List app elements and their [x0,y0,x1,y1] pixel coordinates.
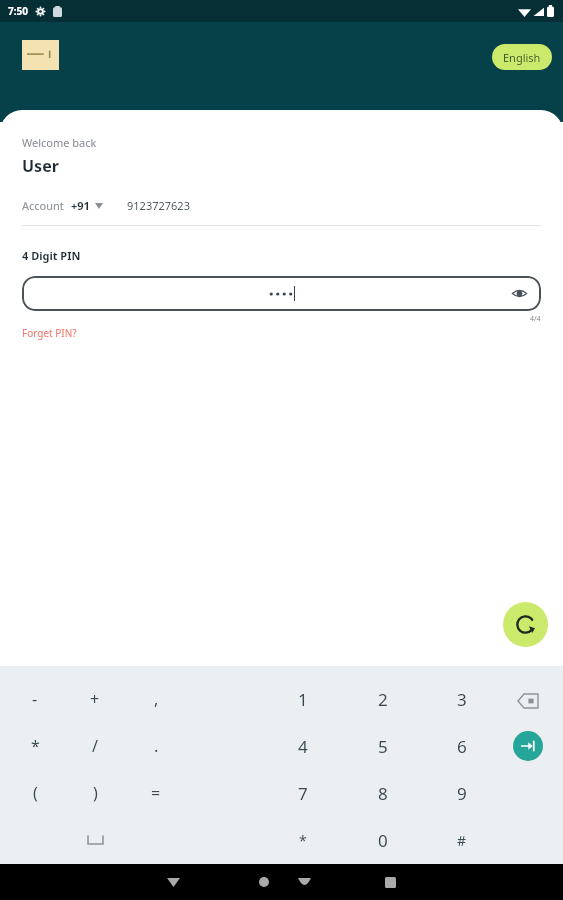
staticText: 4/4 [530,314,541,324]
button[interactable]: = [132,774,180,812]
button[interactable]: Backspace [508,681,548,721]
button[interactable]: 5 [359,727,407,765]
staticText: +91 [71,198,90,213]
button[interactable]: 3 [438,680,486,718]
staticText: , [154,688,159,710]
button[interactable]: , [132,680,180,718]
button[interactable]: 0 [359,821,407,859]
staticText: 9123727623 [127,198,190,213]
staticText: User [22,155,59,177]
button[interactable]: ) [71,774,119,812]
button[interactable]: Forget PIN? [22,326,77,340]
staticText: 5 [378,735,388,758]
button[interactable]: Enter [513,731,543,761]
button[interactable] [22,40,59,70]
staticText: Forget PIN? [22,326,77,340]
button[interactable]: / [71,727,119,765]
staticText: 4 Digit PIN [22,248,81,263]
staticText: 0 [378,829,388,852]
button[interactable]: Space [73,822,117,858]
staticText: # [457,831,467,850]
button[interactable]: 8 [359,774,407,812]
staticText: 3 [457,688,467,711]
staticText: ( [33,782,38,804]
button[interactable]: Recent apps [370,864,410,900]
staticText: Welcome back [22,135,97,150]
staticText: 7:50 [8,4,28,18]
staticText: - [32,688,38,710]
button[interactable]: Show PIN [511,285,528,302]
staticText: + [90,688,100,710]
button[interactable]: Show PIN [22,276,541,311]
staticText: 4 [298,735,308,758]
button[interactable]: ( [11,774,59,812]
staticText: . [154,735,159,757]
button[interactable]: # [438,821,486,859]
button[interactable]: 2 [359,680,407,718]
staticText: 6 [457,735,467,758]
button[interactable]: * [279,821,327,859]
button[interactable]: +91 [71,198,103,213]
staticText: 2 [378,688,388,711]
button[interactable]: Switch keyboard [284,864,324,900]
staticText: * [299,831,307,850]
staticText: / [92,735,98,757]
staticText: = [151,782,161,804]
button[interactable]: + [71,680,119,718]
staticText: ) [93,782,98,804]
button[interactable]: Hide keyboard [153,864,193,900]
staticText: * [31,735,40,757]
button[interactable]: Home [244,864,284,900]
button[interactable]: 7 [279,774,327,812]
button[interactable]: 9 [438,774,486,812]
staticText: 8 [378,782,388,805]
staticText: 9 [457,782,467,805]
staticText: Account [22,198,64,213]
button[interactable]: 6 [438,727,486,765]
button[interactable]: * [11,727,59,765]
button[interactable]: English [492,44,552,70]
button[interactable]: . [132,727,180,765]
button[interactable]: 4 [279,727,327,765]
button[interactable]: - [11,680,59,718]
staticText: 7 [298,782,308,805]
button[interactable]: Refresh [503,602,548,647]
staticText: 1 [298,688,308,711]
staticText: English [503,50,541,65]
button[interactable]: 1 [279,680,327,718]
